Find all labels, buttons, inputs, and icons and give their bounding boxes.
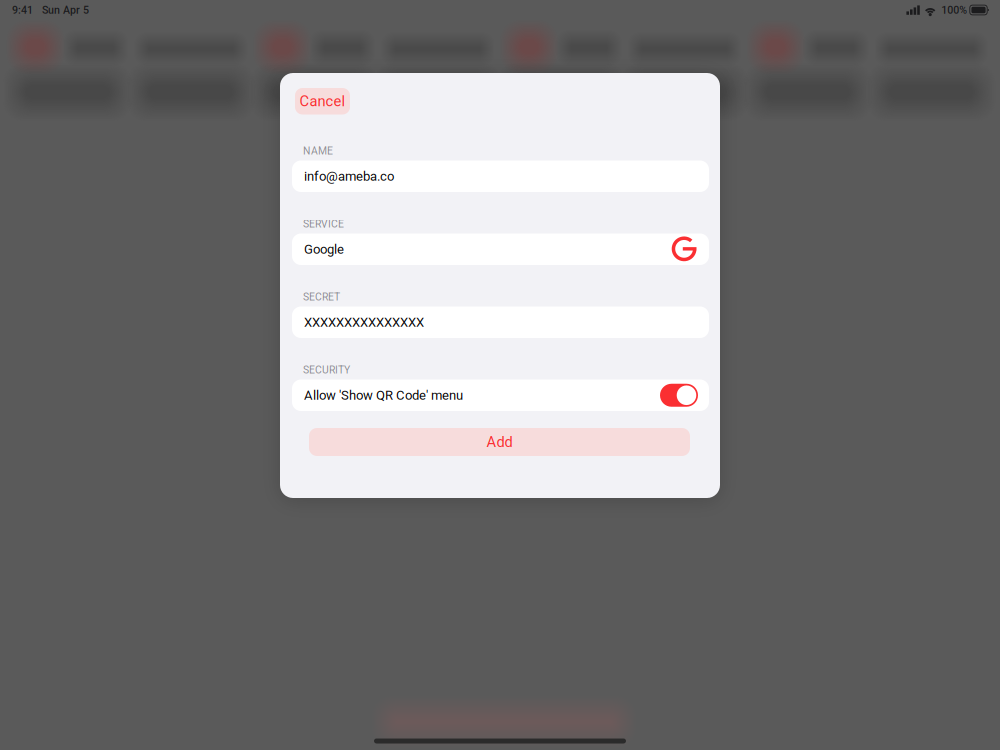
staticText: 9:41 [12,4,33,16]
staticText: Google [304,242,344,257]
staticText: XXXXXXXXXXXXXXX [304,315,424,330]
staticText: NAME [303,145,333,157]
staticText: Allow 'Show QR Code' menu [304,388,463,403]
button[interactable]: Cancel [295,88,350,114]
staticText: Cancel [299,93,345,110]
staticText: SERVICE [303,218,344,230]
staticText: Add [486,433,512,451]
staticText: SECRET [303,291,340,303]
staticText: Sun Apr 5 [42,4,89,16]
staticText: SECURITY [303,364,350,376]
staticText: info@ameba.co [304,169,394,184]
staticText: 100% [941,4,967,16]
button[interactable]: Add [309,428,690,456]
